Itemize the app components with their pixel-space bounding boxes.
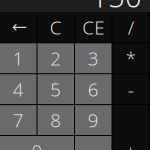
staticText: 0 xyxy=(31,139,42,150)
staticText: 3 xyxy=(88,46,99,71)
staticText: 6 xyxy=(88,77,99,102)
button[interactable]: + xyxy=(112,105,149,150)
staticText: CE xyxy=(82,15,104,40)
staticText: + xyxy=(125,139,136,150)
button[interactable]: Backspace xyxy=(0,12,36,42)
button[interactable]: 5 xyxy=(37,74,74,104)
button[interactable]: CE xyxy=(75,12,111,42)
button[interactable]: 4 xyxy=(0,74,36,104)
button[interactable]: * xyxy=(112,43,149,73)
staticText: 7 xyxy=(13,108,24,132)
staticText: 4 xyxy=(13,77,24,102)
staticText: / xyxy=(128,15,134,40)
staticText: - xyxy=(128,77,134,102)
button[interactable]: 7 xyxy=(0,105,36,135)
staticText: 8 xyxy=(50,108,61,132)
button[interactable]: . xyxy=(75,136,111,150)
button[interactable]: 9 xyxy=(75,105,111,135)
button[interactable]: 1 xyxy=(0,43,36,73)
button[interactable]: 6 xyxy=(75,74,111,104)
staticText: * xyxy=(126,46,136,71)
button[interactable]: 3 xyxy=(75,43,111,73)
button[interactable]: - xyxy=(112,74,149,104)
button[interactable]: 8 xyxy=(37,105,74,135)
staticText: 2 xyxy=(50,46,61,71)
button[interactable]: 2 xyxy=(37,43,74,73)
staticText: 5 xyxy=(50,77,61,102)
staticText: 1 xyxy=(13,46,24,71)
staticText: C xyxy=(50,15,62,40)
button[interactable]: 0 xyxy=(0,136,74,150)
staticText: 9 xyxy=(88,108,99,132)
button[interactable]: C xyxy=(37,12,74,42)
button[interactable]: / xyxy=(112,12,149,42)
staticText: 150 xyxy=(91,0,142,15)
